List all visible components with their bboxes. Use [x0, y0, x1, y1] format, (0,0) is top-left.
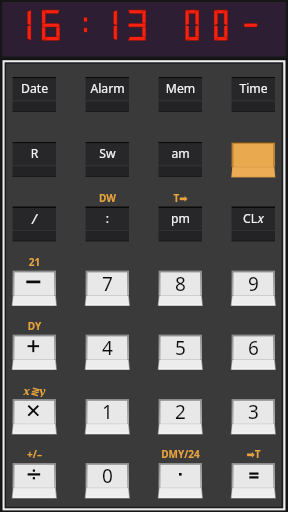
button[interactable]: Date	[13, 77, 56, 99]
staticText: 0	[86, 463, 129, 488]
button[interactable]: 4	[86, 335, 129, 360]
staticText: DW	[86, 191, 129, 205]
staticText: T➡	[159, 191, 202, 205]
button[interactable]: Plus	[13, 335, 56, 371]
staticText: Sw	[86, 145, 129, 167]
button[interactable]: Minus	[13, 271, 56, 307]
staticText: Time	[232, 80, 275, 102]
button[interactable]: 1	[86, 399, 129, 424]
staticText: 5	[159, 335, 202, 360]
button[interactable]: Divide	[13, 463, 56, 499]
staticText: 21	[13, 255, 56, 269]
staticText: 7	[86, 271, 129, 296]
button[interactable]: Time	[232, 77, 275, 99]
button[interactable]: Decimal point	[159, 463, 202, 499]
staticText: Alarm	[86, 80, 129, 102]
button[interactable]: 9	[232, 271, 275, 296]
staticText: x≷y	[13, 383, 56, 397]
staticText: R	[13, 145, 56, 167]
button[interactable]: pm	[159, 207, 202, 229]
staticText: 2	[159, 399, 202, 424]
button[interactable]: Equals	[232, 463, 275, 499]
staticText: 4	[86, 335, 129, 360]
staticText: ➡T	[232, 447, 275, 461]
staticText: 8	[159, 271, 202, 296]
button[interactable]: Sw	[86, 142, 129, 164]
button[interactable]: R	[13, 142, 56, 164]
button[interactable]: Clear	[232, 142, 275, 178]
button[interactable]: 5	[159, 335, 202, 360]
button[interactable]: /	[13, 207, 56, 229]
staticText: 9	[232, 271, 275, 296]
staticText: DMY/24	[159, 447, 202, 461]
staticText: 3	[232, 399, 275, 424]
staticText: pm	[159, 210, 202, 232]
staticText: DY	[13, 319, 56, 333]
staticText: :	[86, 210, 129, 232]
button[interactable]: 0	[86, 463, 129, 488]
button[interactable]: Multiply	[13, 399, 56, 435]
button[interactable]: :	[86, 207, 129, 229]
button[interactable]: CL𝑥	[232, 207, 275, 229]
staticText: /	[13, 210, 56, 232]
button[interactable]: am	[159, 142, 202, 164]
button[interactable]: Alarm	[86, 77, 129, 99]
button[interactable]: 6	[232, 335, 275, 360]
staticText: 1	[86, 399, 129, 424]
button[interactable]: 3	[232, 399, 275, 424]
button[interactable]: Mem	[159, 77, 202, 99]
button[interactable]: 8	[159, 271, 202, 296]
button[interactable]: 7	[86, 271, 129, 296]
button[interactable]: 2	[159, 399, 202, 424]
staticText: Date	[13, 80, 56, 102]
staticText: CL𝑥	[232, 210, 275, 232]
staticText: +/–	[13, 447, 56, 461]
staticText: am	[159, 145, 202, 167]
staticText: 6	[232, 335, 275, 360]
staticText: Mem	[159, 80, 202, 102]
